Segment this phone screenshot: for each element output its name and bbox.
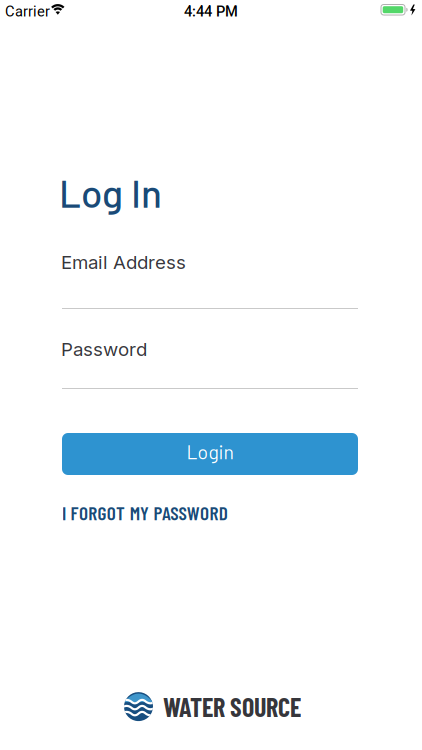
staticText: I FORGOT MY PASSWORD (62, 501, 228, 524)
staticText: Log In (59, 169, 162, 215)
button[interactable]: Email Address (61, 251, 358, 309)
staticText: WATER SOURCE (163, 691, 301, 722)
button[interactable]: I FORGOT MY PASSWORD (62, 501, 228, 524)
staticText: Email Address (61, 251, 186, 274)
staticText: Carrier (5, 3, 50, 20)
staticText: 4:44 PM (184, 3, 238, 20)
button[interactable]: Password (61, 338, 358, 389)
staticText: Password (61, 338, 147, 361)
staticText: Login (186, 440, 233, 463)
button[interactable]: Login (62, 433, 358, 475)
